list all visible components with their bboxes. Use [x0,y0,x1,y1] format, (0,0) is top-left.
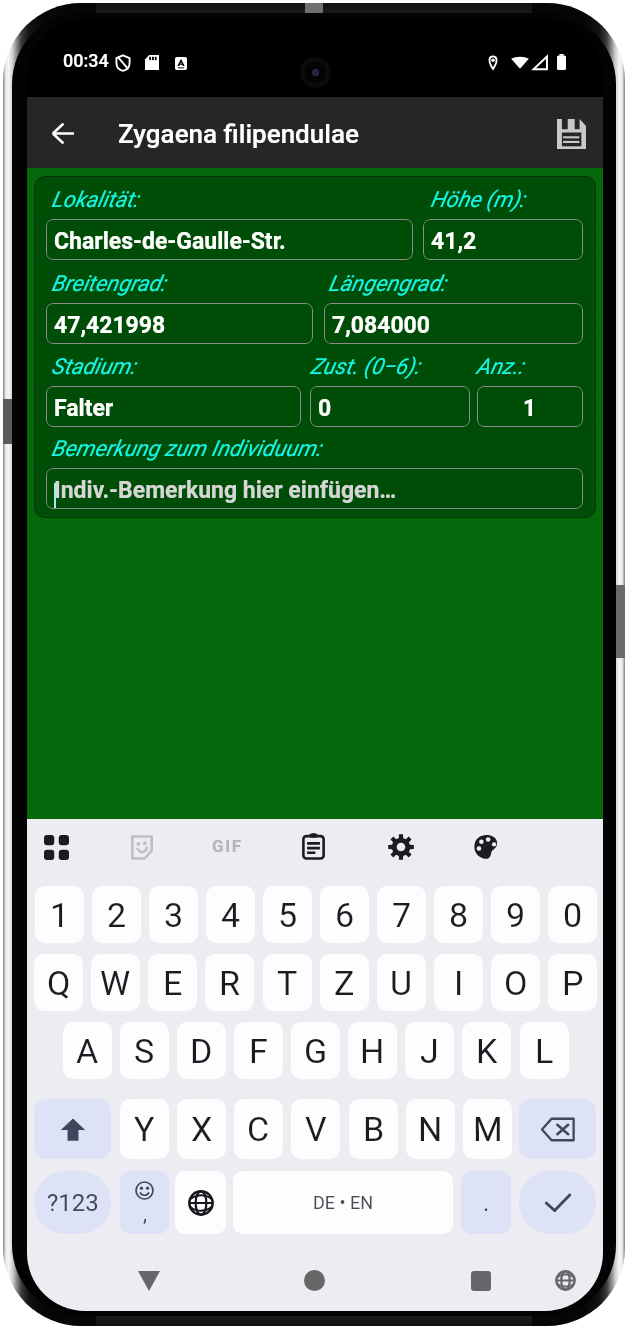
staticText: M [473,1109,503,1149]
staticText: 41,2 [431,228,477,255]
staticText: R [219,963,240,1003]
staticText: 00:34 [63,50,109,71]
button[interactable]: Z [320,954,369,1011]
button[interactable]: C [234,1099,283,1159]
staticText: Höhe (m): [430,187,525,213]
button[interactable]: G [291,1022,340,1079]
staticText: 47,421998 [54,312,166,339]
button[interactable]: 3 [149,886,198,943]
button[interactable]: N [406,1099,455,1159]
staticText: F [249,1031,268,1071]
staticText: C [247,1109,270,1149]
staticText: A [76,1031,99,1071]
button[interactable]: F [234,1022,283,1079]
button[interactable]: V [291,1099,340,1159]
button[interactable]: 7,084000 [324,303,583,344]
button[interactable]: Enter [519,1171,596,1234]
staticText: , [143,1202,147,1225]
staticText: V [305,1109,327,1149]
button[interactable]: 1 [477,386,583,427]
button[interactable]: O [491,954,540,1011]
staticText: 4 [221,895,241,935]
button[interactable]: 5 [263,886,312,943]
button[interactable]: A [63,1022,112,1079]
staticText: Anz.: [476,354,524,380]
button[interactable]: 9 [491,886,540,943]
button[interactable]: Change keyboard [175,1171,226,1234]
staticText: K [476,1031,498,1071]
staticText: 8 [449,895,469,935]
button[interactable]: Home [292,1258,337,1303]
staticText: 0 [563,895,583,935]
button[interactable]: T [263,954,312,1011]
staticText: E [163,963,183,1003]
button[interactable]: Back [37,107,89,159]
button[interactable]: E [148,954,197,1011]
staticText: 3 [164,895,184,935]
button[interactable]: H [348,1022,397,1079]
button[interactable]: M [463,1099,512,1159]
button[interactable]: Indiv.-Bemerkung hier einfügen… [46,468,583,509]
button[interactable]: W [91,954,140,1011]
button[interactable]: S [120,1022,169,1079]
button[interactable]: L [520,1022,569,1079]
button[interactable]: 4 [206,886,255,943]
staticText: Charles-de-Gaulle-Str. [54,228,286,255]
button[interactable]: 41,2 [423,219,583,260]
button[interactable]: R [205,954,254,1011]
button[interactable]: Recent apps [458,1258,503,1303]
button[interactable]: D [177,1022,226,1079]
button[interactable]: 8 [434,886,483,943]
button[interactable]: 6 [320,886,369,943]
staticText: D [190,1031,213,1071]
staticText: G [304,1031,328,1071]
button[interactable]: Charles-de-Gaulle-Str. [46,219,413,260]
staticText: Q [47,963,71,1003]
staticText: 9 [506,895,526,935]
staticText: 2 [107,895,127,935]
button[interactable]: ?123 [34,1171,111,1234]
button[interactable]: X [177,1099,226,1159]
button[interactable]: Q [34,954,83,1011]
button[interactable]: Shift [34,1099,111,1159]
staticText: N [418,1109,443,1149]
staticText: X [191,1109,213,1149]
staticText: Stadium: [51,354,136,380]
staticText: . [483,1189,490,1217]
button[interactable]: 1 [35,886,84,943]
button[interactable]: 0 [310,386,470,427]
button[interactable]: U [377,954,426,1011]
staticText: 5 [278,895,298,935]
staticText: Z [334,963,355,1003]
staticText: DE • EN [313,1192,374,1213]
button[interactable]: 7 [377,886,426,943]
button[interactable]: I [434,954,483,1011]
staticText: W [100,963,131,1003]
button[interactable]: Falter [46,386,301,427]
staticText: O [504,963,528,1003]
staticText: 6 [335,895,355,935]
staticText: U [390,963,413,1003]
button[interactable]: Y [120,1099,169,1159]
button[interactable]: 0 [548,886,597,943]
staticText: 7,084000 [332,312,430,339]
button[interactable]: 2 [92,886,141,943]
staticText: 1 [523,395,537,422]
staticText: Falter [54,395,114,422]
button[interactable]: K [462,1022,511,1079]
button[interactable]: Emoji [120,1171,169,1234]
button[interactable]: DE • EN [233,1171,453,1234]
button[interactable]: P [548,954,597,1011]
staticText: S [134,1031,155,1071]
staticText: J [420,1031,439,1071]
staticText: Lokalität: [51,187,139,213]
button[interactable]: Save [543,106,599,162]
button[interactable]: . [461,1171,511,1234]
button[interactable]: B [349,1099,398,1159]
button[interactable]: Switch keyboard [543,1258,588,1303]
staticText: L [535,1031,554,1071]
button[interactable]: 47,421998 [46,303,313,344]
button[interactable]: Back [126,1258,171,1303]
button[interactable]: Backspace [519,1099,596,1159]
button[interactable]: J [405,1022,454,1079]
